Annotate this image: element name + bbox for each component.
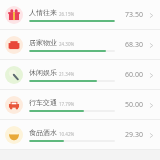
staticText: 17.79%	[59, 101, 75, 107]
staticText: 29.30	[119, 130, 143, 140]
staticText: 21.34%	[59, 71, 75, 77]
staticText: 26.15%	[59, 11, 75, 17]
button[interactable]: 居家物业	[0, 30, 160, 59]
button[interactable]: 休闲娱乐	[0, 60, 160, 89]
staticText: 休闲娱乐	[29, 68, 57, 77]
button[interactable]: Details	[146, 40, 156, 50]
button[interactable]: Details	[146, 130, 156, 140]
button[interactable]: Details	[146, 70, 156, 80]
staticText: 行车交通	[29, 98, 57, 107]
staticText: 食品酒水	[29, 128, 57, 137]
staticText: 人情往来	[29, 8, 57, 17]
staticText: 73.50	[119, 10, 143, 20]
button[interactable]: Details	[146, 10, 156, 20]
staticText: 居家物业	[29, 38, 57, 47]
staticText: 10.42%	[59, 131, 75, 137]
staticText: 60.00	[119, 70, 143, 80]
button[interactable]: 人情往来	[0, 0, 160, 29]
button[interactable]: Details	[146, 100, 156, 110]
staticText: 50.00	[119, 100, 143, 110]
button[interactable]: 行车交通	[0, 90, 160, 119]
staticText: 24.30%	[59, 41, 75, 47]
button[interactable]: 食品酒水	[0, 120, 160, 149]
staticText: 68.30	[119, 40, 143, 50]
